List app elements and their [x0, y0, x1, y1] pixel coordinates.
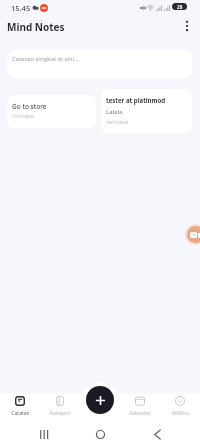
staticText: 15.45	[11, 3, 31, 13]
staticText: Kategori	[50, 410, 70, 417]
button[interactable]: Go to store	[7, 95, 96, 128]
button[interactable]: tester at platinmod	[101, 89, 192, 133]
staticText: Go to store	[12, 102, 47, 111]
staticText: Catatan	[11, 410, 30, 417]
staticText: 17/11/2025	[12, 114, 35, 120]
staticText: Milikku	[172, 410, 189, 417]
staticText: 28	[177, 4, 183, 10]
button[interactable]: Kalender	[120, 395, 160, 417]
button[interactable]: Milikku	[160, 395, 200, 417]
button[interactable]: More options	[178, 17, 196, 35]
staticText: Catatan singkat di sini...	[12, 55, 79, 63]
button[interactable]: Floating video widget	[187, 226, 200, 243]
staticText: tester at platinmod	[106, 96, 166, 104]
button[interactable]: Catatan singkat di sini...	[7, 50, 192, 78]
staticText: Lalala	[106, 108, 123, 116]
button[interactable]: Catatan	[0, 395, 40, 417]
button[interactable]: Add note	[86, 386, 114, 414]
staticText: Kalender	[129, 410, 151, 417]
staticText: Mind Notes	[7, 20, 65, 34]
button[interactable]: Kategori	[40, 395, 80, 417]
staticText: 16/11/2025	[106, 120, 129, 126]
